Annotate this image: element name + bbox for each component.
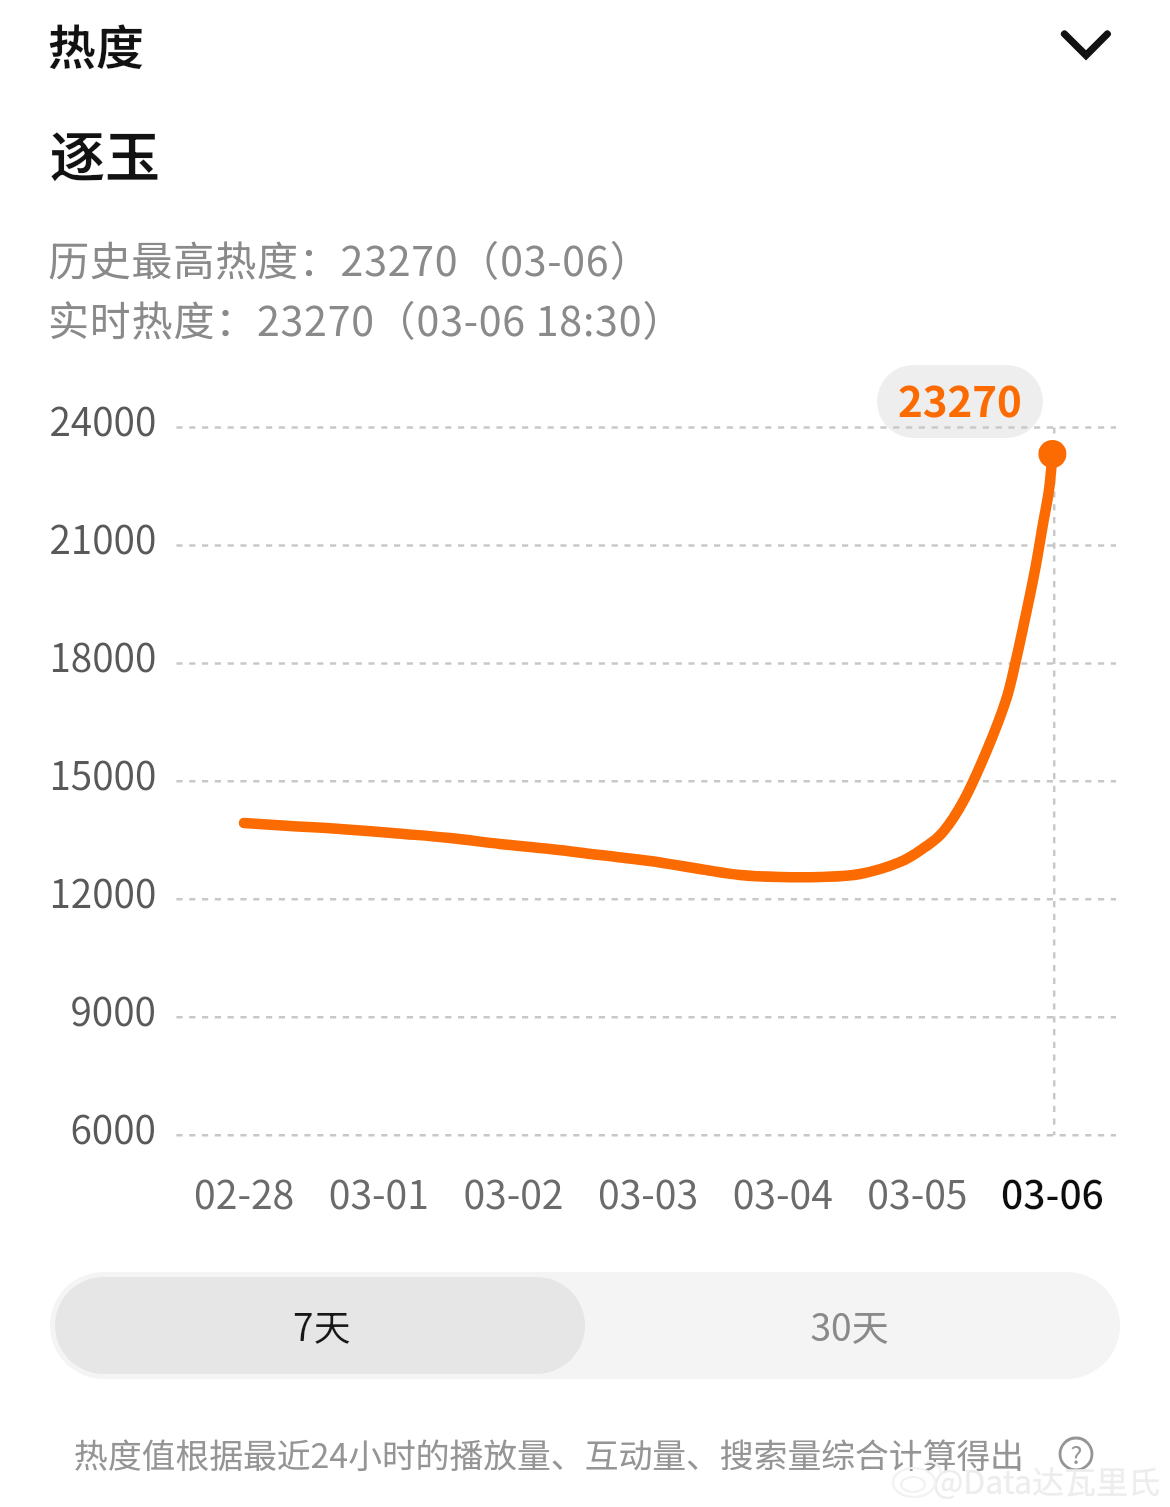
button[interactable]	[0, 0, 1170, 1507]
